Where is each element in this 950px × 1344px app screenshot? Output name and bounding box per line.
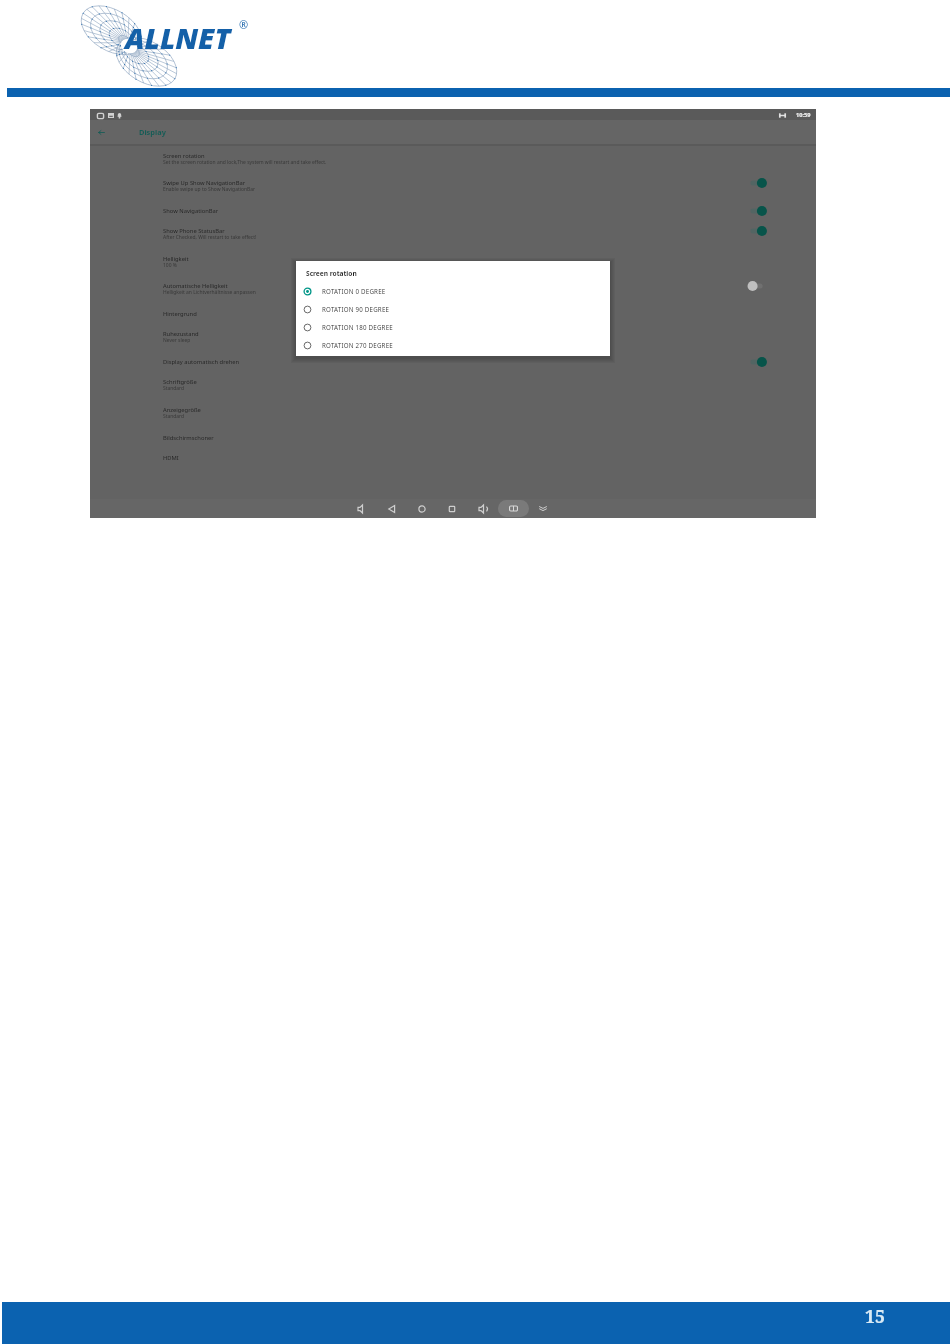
- staticText: Automatische Helligkeit: [163, 282, 228, 290]
- staticText: Hintergrund: [163, 310, 197, 318]
- button[interactable]: Show Phone StatusBar: [90, 222, 816, 249]
- button[interactable]: Hintergrund: [90, 305, 816, 325]
- button[interactable]: Expand: [535, 499, 551, 518]
- staticText: ROTATION 90 DEGREE: [322, 305, 390, 313]
- button[interactable]: Screen rotation: [90, 147, 816, 174]
- button[interactable]: Volume up: [475, 499, 491, 518]
- staticText: ROTATION 180 DEGREE: [322, 323, 393, 331]
- staticText: Schriftgröße: [163, 378, 197, 386]
- staticText: Bildschirmschoner: [163, 434, 214, 442]
- button[interactable]: Screenshot: [498, 500, 529, 517]
- staticText: Enable swipe up to Show NavigationBar: [163, 186, 256, 193]
- staticText: Show Phone StatusBar: [163, 227, 225, 235]
- staticText: Set the screen rotation and lock,The sys…: [163, 159, 327, 166]
- staticText: Display automatisch drehen: [163, 358, 240, 366]
- button[interactable]: Toggle Automatische Helligkeit: [742, 279, 766, 293]
- staticText: Swipe Up Show NavigationBar: [163, 179, 246, 187]
- staticText: ALLNET: [125, 18, 231, 57]
- button[interactable]: Volume down: [354, 499, 370, 518]
- staticText: Ruhezustand: [163, 330, 199, 338]
- button[interactable]: Swipe Up Show NavigationBar: [90, 174, 816, 201]
- staticText: HDMI: [163, 454, 179, 462]
- staticText: Display: [139, 127, 166, 137]
- staticText: Screen rotation: [306, 269, 357, 278]
- button[interactable]: Toggle Show NavigationBar: [742, 204, 766, 218]
- button[interactable]: Toggle Show Phone StatusBar: [742, 224, 766, 238]
- staticText: Screen rotation: [163, 152, 205, 160]
- button[interactable]: Ruhezustand: [90, 325, 816, 352]
- staticText: Anzeigegröße: [163, 406, 201, 414]
- staticText: After Checked, Will restart to take effe…: [163, 234, 257, 241]
- button[interactable]: Display automatisch drehen: [90, 353, 816, 373]
- staticText: Helligkeit an Lichtverhältnisse anpassen: [163, 289, 256, 296]
- button[interactable]: Toggle Swipe Up Show NavigationBar: [742, 176, 766, 190]
- button[interactable]: ROTATION 0 DEGREE: [296, 282, 610, 300]
- staticText: ROTATION 270 DEGREE: [322, 341, 393, 349]
- button[interactable]: Automatische Helligkeit: [90, 277, 816, 304]
- staticText: ®: [239, 17, 249, 32]
- button[interactable]: ROTATION 270 DEGREE: [296, 336, 610, 354]
- button[interactable]: Helligkeit: [90, 250, 816, 277]
- staticText: 10:59: [796, 111, 811, 119]
- staticText: Helligkeit: [163, 255, 189, 263]
- button[interactable]: Toggle Display automatisch drehen: [742, 355, 766, 369]
- button[interactable]: Back: [384, 499, 400, 518]
- button[interactable]: Home: [414, 499, 430, 518]
- staticText: 100 %: [163, 262, 177, 269]
- staticText: Never sleep: [163, 337, 191, 344]
- staticText: Show NavigationBar: [163, 207, 219, 215]
- button[interactable]: Show NavigationBar: [90, 202, 816, 222]
- button[interactable]: Recent apps: [444, 499, 460, 518]
- staticText: ROTATION 0 DEGREE: [322, 287, 386, 295]
- staticText: Standard: [163, 413, 185, 420]
- button[interactable]: Back: [91, 120, 111, 144]
- staticText: Standard: [163, 385, 185, 392]
- button[interactable]: ROTATION 180 DEGREE: [296, 318, 610, 336]
- button[interactable]: ROTATION 90 DEGREE: [296, 300, 610, 318]
- staticText: 15: [865, 1304, 885, 1328]
